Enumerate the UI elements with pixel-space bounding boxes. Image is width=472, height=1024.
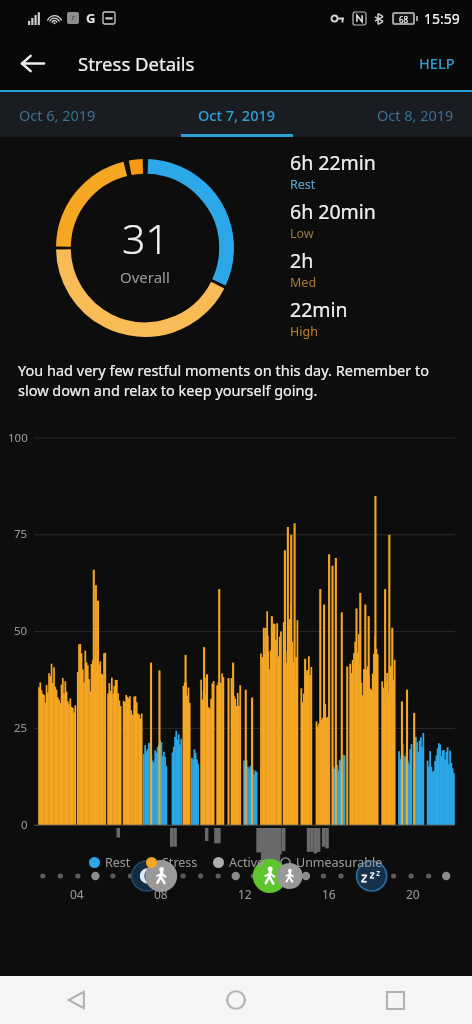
staticText: 6h 20min [290, 198, 376, 225]
staticText: 0 [21, 817, 28, 833]
button[interactable]: HELP [402, 39, 472, 87]
staticText: Oct 8, 2019 [377, 105, 454, 125]
button[interactable]: Home [215, 979, 257, 1021]
staticText: Med [290, 274, 317, 291]
button[interactable]: Active [213, 854, 265, 871]
staticText: 15:59 [424, 9, 460, 28]
staticText: r [72, 13, 75, 23]
staticText: Stress Details [78, 51, 195, 76]
staticText: Low [290, 225, 314, 242]
button[interactable]: Oct 8, 2019 [315, 92, 472, 137]
staticText: Oct 6, 2019 [19, 105, 96, 125]
button[interactable]: Back [11, 42, 53, 84]
staticText: 08 [154, 886, 168, 902]
staticText: Oct 7, 2019 [198, 105, 276, 125]
staticText: Unmeasurable [296, 854, 383, 871]
staticText: HELP [419, 53, 455, 73]
staticText: 75 [14, 526, 28, 542]
staticText: Active [229, 854, 265, 871]
staticText: 20 [406, 886, 420, 902]
button[interactable]: Oct 6, 2019 [0, 92, 158, 137]
button[interactable]: Unmeasurable [280, 854, 383, 871]
staticText: Rest [105, 854, 131, 871]
staticText: High [290, 323, 318, 340]
staticText: Stress [162, 854, 198, 871]
button[interactable]: Oct 7, 2019 [158, 92, 315, 137]
staticText: 25 [14, 720, 28, 736]
staticText: 50 [14, 623, 28, 639]
staticText: 16 [322, 886, 336, 902]
staticText: G [86, 9, 96, 27]
staticText: 100 [8, 430, 28, 446]
staticText: Overall [120, 267, 170, 287]
staticText: 2h [290, 247, 314, 274]
staticText: 68 [399, 14, 409, 23]
button[interactable]: Rest [89, 854, 131, 871]
button[interactable]: Recents [374, 979, 416, 1021]
staticText: Rest [290, 176, 316, 193]
button[interactable]: Back [56, 979, 98, 1021]
staticText: 31 [122, 210, 169, 266]
staticText: 6h 22min [290, 149, 376, 176]
staticText: 22min [290, 296, 348, 323]
button[interactable]: Stress [146, 854, 198, 871]
staticText: You had very few restful moments on this… [18, 360, 454, 400]
staticText: 12 [238, 886, 252, 902]
staticText: 04 [70, 886, 84, 902]
